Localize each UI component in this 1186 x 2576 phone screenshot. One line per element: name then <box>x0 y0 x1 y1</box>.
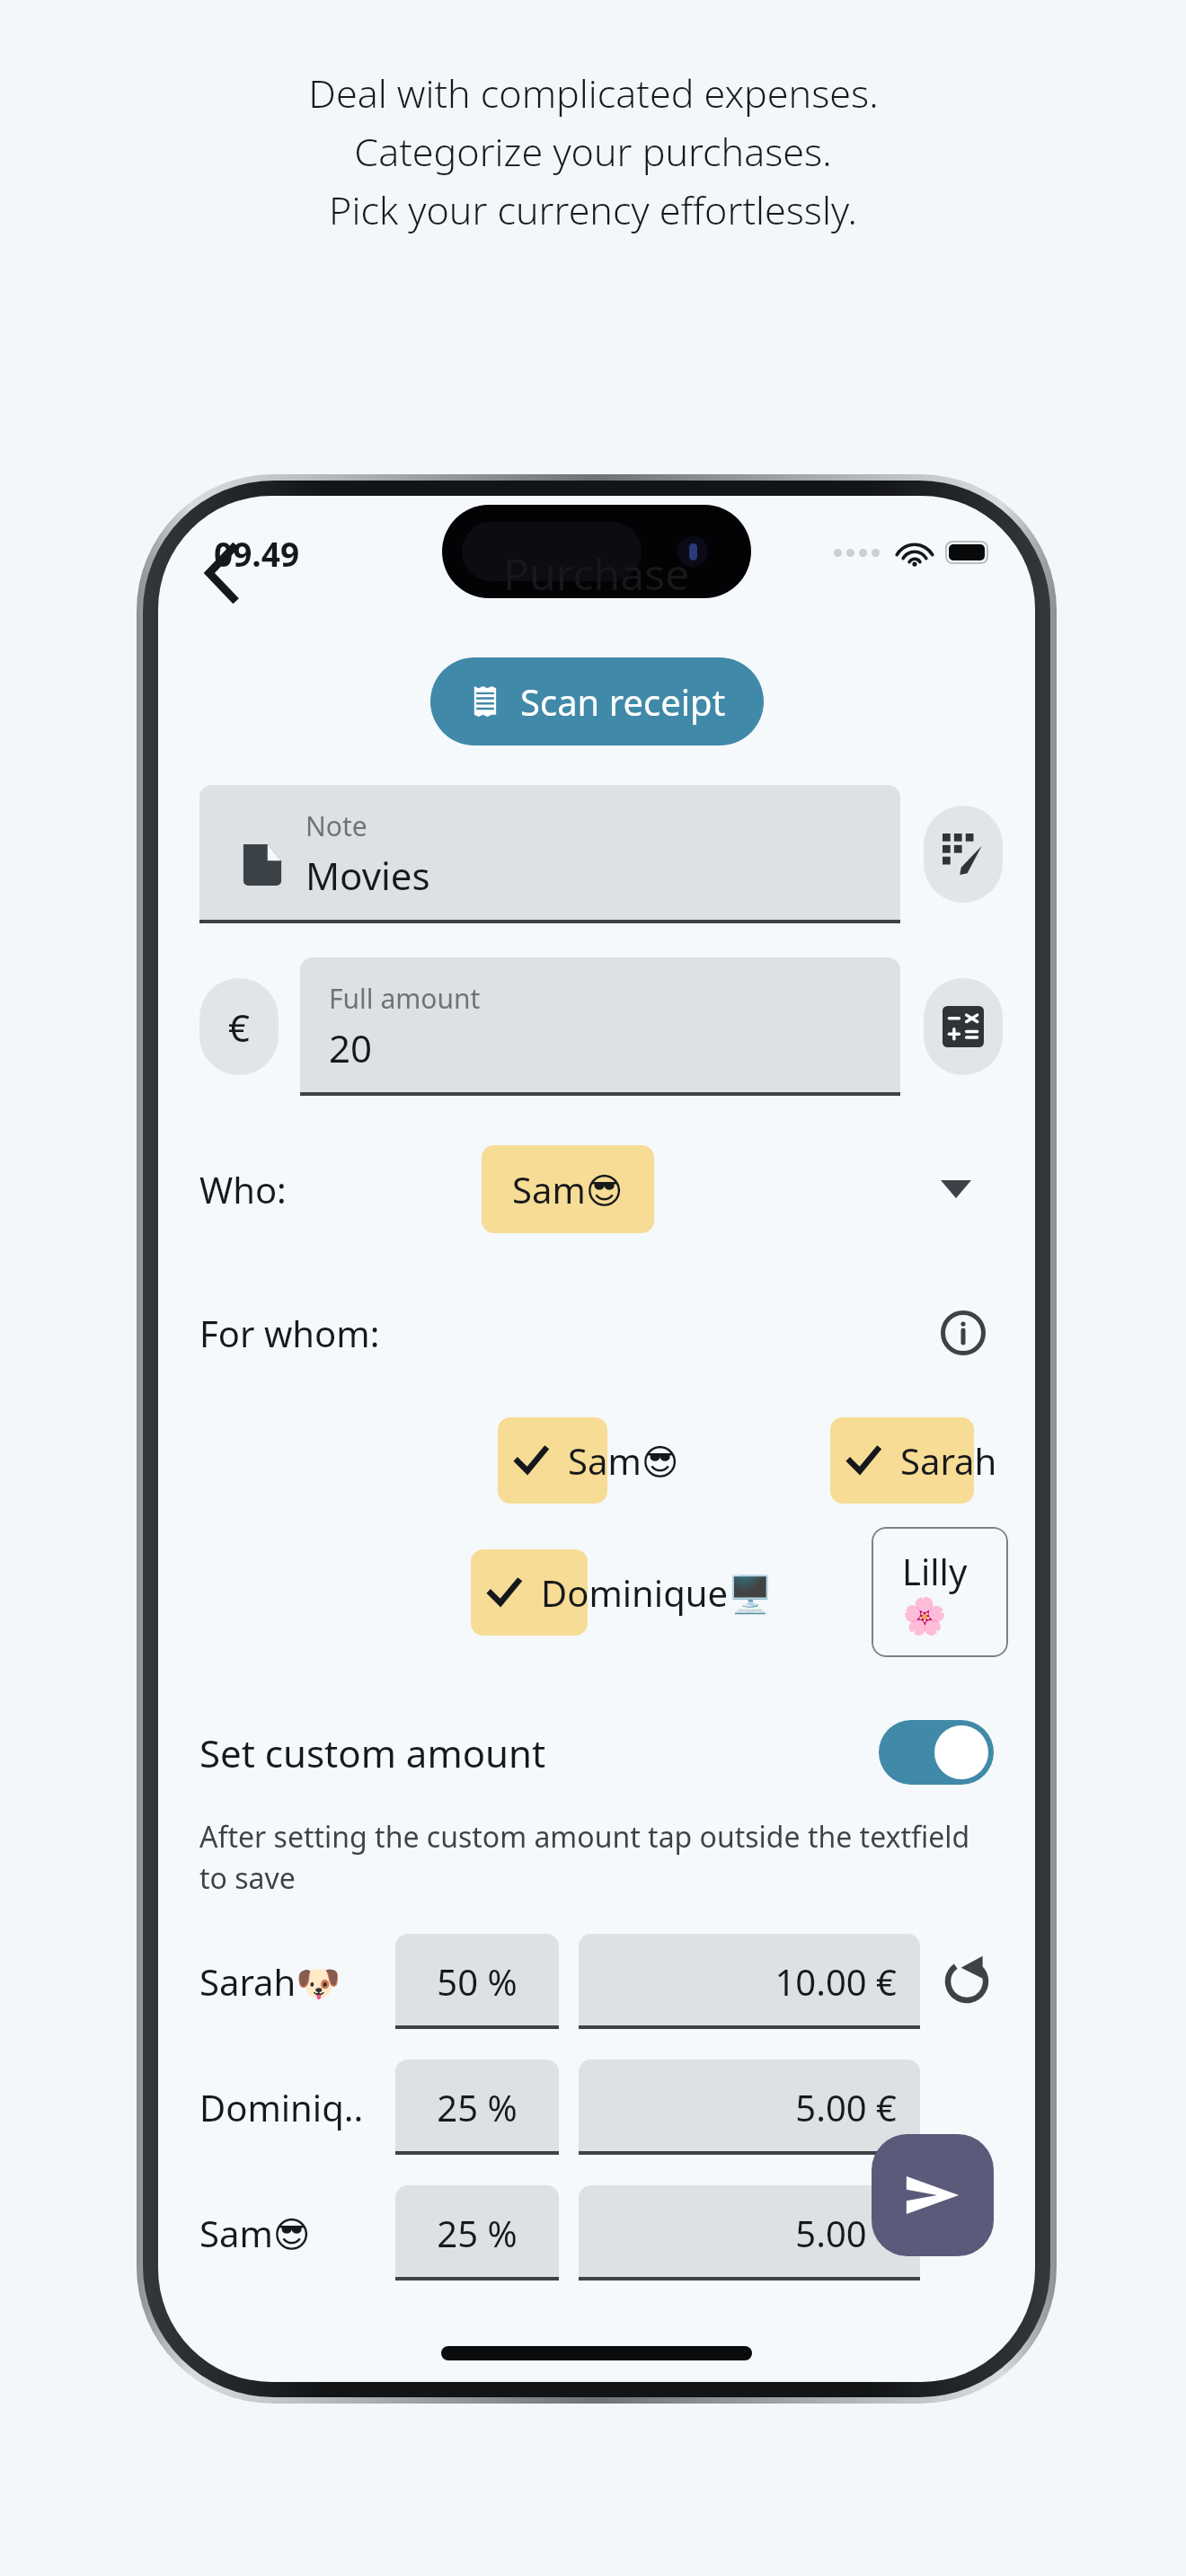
button[interactable]: 50 % <box>395 1934 559 2029</box>
button[interactable]: Currency <box>199 978 279 1075</box>
staticText: Note <box>305 807 367 844</box>
staticText: Pick your currency effortlessly. <box>329 183 857 236</box>
staticText: Sarah🐶 <box>900 1436 1035 1485</box>
staticText: 10.00 € <box>602 1957 897 2006</box>
staticText: € <box>228 1001 251 1053</box>
button[interactable]: Lilly🌸 <box>872 1527 1008 1657</box>
staticText: 5.00 € <box>602 2083 897 2131</box>
staticText: Dominique🖥 <box>541 1568 773 1617</box>
staticText: Deal with complicated expenses. <box>308 66 879 119</box>
button[interactable]: Calculator <box>924 978 1003 1075</box>
staticText: Sam😎 <box>199 2209 311 2257</box>
button[interactable]: Expand who <box>929 1162 983 1216</box>
staticText: 5.00 € <box>602 2209 897 2257</box>
staticText: Who: <box>199 1165 287 1213</box>
staticText: Purchase <box>503 544 690 603</box>
button[interactable]: Dominique🖥 <box>471 1549 783 1636</box>
staticText: Sam😎 <box>568 1436 679 1485</box>
staticText: Dominiq... <box>199 2083 372 2131</box>
button[interactable]: Reset <box>934 1949 999 2014</box>
staticText: Sarah🐶 <box>199 1957 341 2006</box>
button[interactable]: 25 % <box>395 2185 559 2280</box>
staticText: 09.49 <box>214 531 300 576</box>
staticText: Scan receipt <box>520 677 726 726</box>
button[interactable]: Sarah🐶 <box>830 1417 1035 1504</box>
button[interactable]: Info <box>934 1304 992 1362</box>
staticText: Set custom amount <box>199 1727 546 1778</box>
staticText: Movies <box>305 850 430 901</box>
staticText: After setting the custom amount tap outs… <box>199 1817 994 1897</box>
button[interactable]: 10.00 € <box>579 1934 920 2029</box>
button[interactable]: Back <box>181 532 264 614</box>
staticText: Categorize your purchases. <box>354 125 832 178</box>
staticText: 20 <box>329 1022 373 1073</box>
staticText: 50 % <box>419 1957 535 2006</box>
staticText: For whom: <box>199 1309 380 1357</box>
button[interactable]: 5.00 € <box>579 2060 920 2155</box>
staticText: Lilly🌸 <box>902 1547 978 1637</box>
button[interactable]: 5.00 € <box>579 2185 920 2280</box>
button[interactable]: Note <box>199 785 900 923</box>
staticText: 25 % <box>419 2083 535 2131</box>
button[interactable]: 25 % <box>395 2060 559 2155</box>
staticText: Sam😎 <box>512 1165 624 1213</box>
button[interactable]: Set custom amount <box>199 1707 994 1797</box>
button[interactable]: Full amount <box>300 957 900 1096</box>
button[interactable]: Send <box>872 2134 994 2256</box>
button[interactable]: Sam😎 <box>482 1145 654 1233</box>
button[interactable]: Scan receipt <box>430 657 764 745</box>
staticText: Full amount <box>329 980 481 1017</box>
button[interactable]: Sam😎 <box>498 1417 690 1504</box>
staticText: 25 % <box>419 2209 535 2257</box>
button[interactable]: Choose category <box>924 806 1003 903</box>
